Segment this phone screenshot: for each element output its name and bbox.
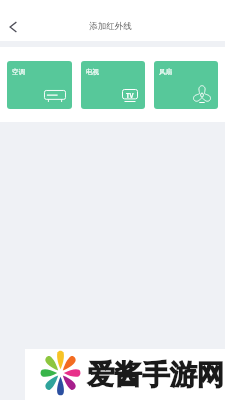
staticText: 空调 <box>12 68 26 76</box>
staticText: 电视 <box>86 68 100 76</box>
button[interactable]: 风扇 <box>154 61 218 109</box>
button[interactable]: 电视 <box>81 61 145 109</box>
staticText: 爱酱手游网 <box>87 358 225 393</box>
staticText: 风扇 <box>159 68 173 76</box>
staticText: 添加红外线 <box>89 21 132 32</box>
staticText: TV <box>126 91 134 99</box>
button[interactable]: Back <box>2 16 24 38</box>
button[interactable]: 空调 <box>7 61 72 109</box>
